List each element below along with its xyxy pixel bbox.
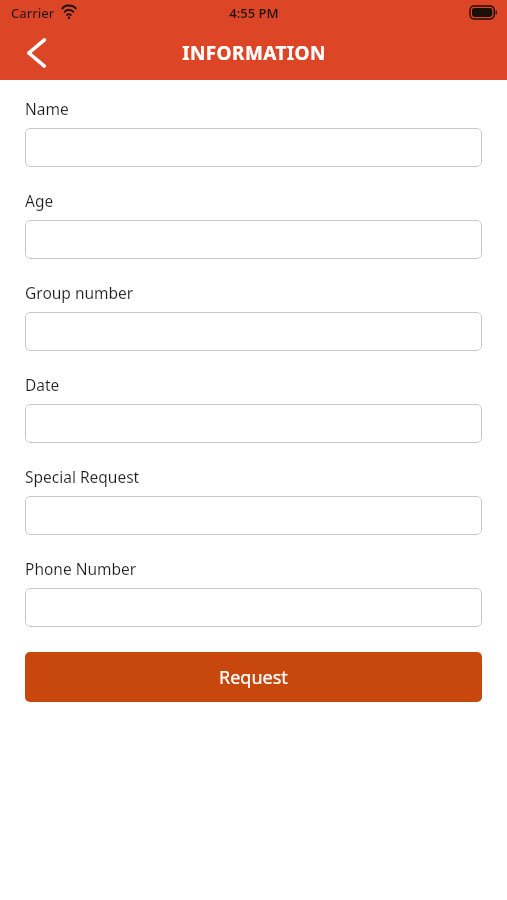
button[interactable]: Special Request: [25, 496, 482, 535]
staticText: INFORMATION: [182, 40, 326, 66]
staticText: Special Request: [25, 466, 140, 487]
staticText: Phone Number: [25, 558, 137, 579]
button[interactable]: Age: [25, 220, 482, 259]
staticText: Name: [25, 98, 69, 119]
staticText: Request: [219, 665, 288, 690]
button[interactable]: Back: [14, 31, 58, 75]
staticText: Group number: [25, 282, 134, 303]
staticText: Carrier: [11, 4, 55, 22]
button[interactable]: Group number: [25, 312, 482, 351]
button[interactable]: Date: [25, 404, 482, 443]
button[interactable]: Name: [25, 128, 482, 167]
staticText: Age: [25, 190, 54, 211]
staticText: Date: [25, 374, 60, 395]
button[interactable]: Request: [25, 652, 482, 702]
button[interactable]: Phone Number: [25, 588, 482, 627]
staticText: 4:55 PM: [229, 4, 279, 22]
